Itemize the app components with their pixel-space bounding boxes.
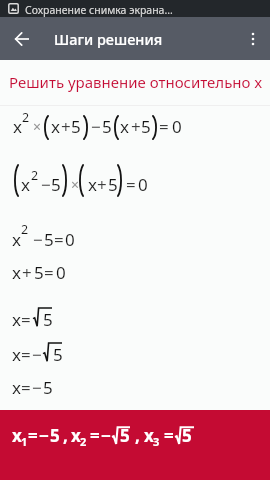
staticText: 2 (21, 221, 29, 238)
staticText: x (71, 424, 81, 447)
staticText: 2 (22, 109, 30, 126)
staticText: = (159, 115, 169, 138)
staticText: × (33, 117, 42, 136)
staticText: x (12, 424, 22, 447)
staticText: 5 (53, 343, 63, 366)
staticText: x (12, 376, 21, 399)
staticText: 5 (141, 115, 151, 138)
staticText: + (22, 261, 32, 284)
staticText: + (131, 115, 141, 138)
staticText: 5 (51, 173, 61, 196)
staticText: − (101, 424, 111, 447)
staticText: x (21, 173, 30, 196)
staticText: 5 (102, 115, 112, 138)
staticText: 0 (172, 115, 182, 138)
staticText: x (51, 115, 60, 138)
staticText: 5 (71, 115, 81, 138)
staticText: = (28, 424, 38, 447)
staticText: 3 (153, 434, 160, 449)
staticText: x (88, 173, 97, 196)
staticText: , (63, 424, 68, 447)
staticText: , (135, 424, 140, 447)
staticText: + (97, 173, 107, 196)
staticText: − (32, 343, 42, 366)
staticText: 5 (50, 424, 60, 447)
staticText: = (21, 376, 31, 399)
staticText: x (12, 308, 21, 331)
staticText: x (12, 261, 21, 284)
staticText: = (164, 424, 174, 447)
staticText: − (41, 173, 51, 196)
staticText: x (12, 228, 21, 251)
staticText: 2 (80, 434, 87, 449)
staticText: − (39, 424, 49, 447)
staticText: = (90, 424, 100, 447)
staticText: 2 (31, 167, 39, 184)
staticText: 5 (182, 424, 192, 447)
staticText: 5 (44, 228, 54, 251)
staticText: = (21, 343, 31, 366)
button[interactable]: Назад (6, 23, 38, 55)
staticText: = (21, 308, 31, 331)
staticText: = (126, 173, 136, 196)
staticText: = (44, 261, 54, 284)
staticText: 0 (56, 261, 66, 284)
staticText: 0 (138, 173, 148, 196)
staticText: − (32, 376, 42, 399)
staticText: × (71, 175, 80, 194)
staticText: 5 (108, 173, 118, 196)
staticText: − (33, 228, 43, 251)
staticText: 5 (34, 261, 44, 284)
staticText: = (54, 228, 64, 251)
staticText: Шаги решения (54, 29, 163, 49)
button[interactable]: Ещё (237, 23, 269, 55)
staticText: 5 (120, 424, 130, 447)
staticText: + (61, 115, 71, 138)
staticText: − (91, 115, 101, 138)
staticText: 5 (43, 376, 53, 399)
staticText: Решить уравнение относительно x (9, 72, 263, 92)
staticText: 0 (65, 228, 75, 251)
staticText: 5 (43, 308, 53, 331)
staticText: x (120, 115, 129, 138)
staticText: x (12, 343, 21, 366)
staticText: x (13, 115, 22, 138)
staticText: 1 (21, 434, 28, 449)
staticText: x (144, 424, 154, 447)
staticText: Сохранение снимка экрана... (25, 3, 173, 17)
